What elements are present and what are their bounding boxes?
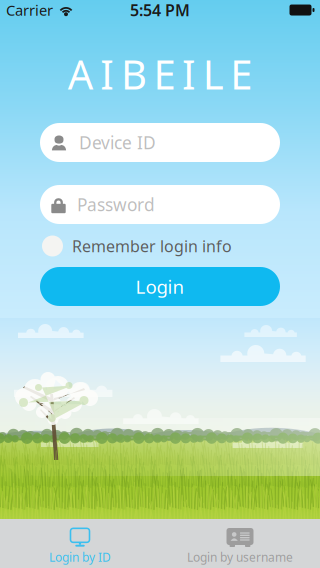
staticText: Password — [77, 193, 155, 216]
button[interactable]: Login — [40, 267, 280, 306]
staticText: AIBEILE — [68, 47, 252, 100]
button[interactable]: Remember login info — [40, 234, 280, 258]
staticText: Login by username — [187, 549, 293, 565]
staticText: Device ID — [79, 131, 156, 154]
staticText: Remember login info — [72, 235, 232, 257]
staticText: 5:54 PM — [130, 0, 190, 21]
staticText: Login — [135, 274, 184, 299]
button[interactable]: Login by username — [160, 519, 320, 568]
button[interactable]: Login by ID — [0, 519, 160, 568]
staticText: Login by ID — [49, 549, 111, 565]
staticText: Carrier — [6, 0, 53, 20]
